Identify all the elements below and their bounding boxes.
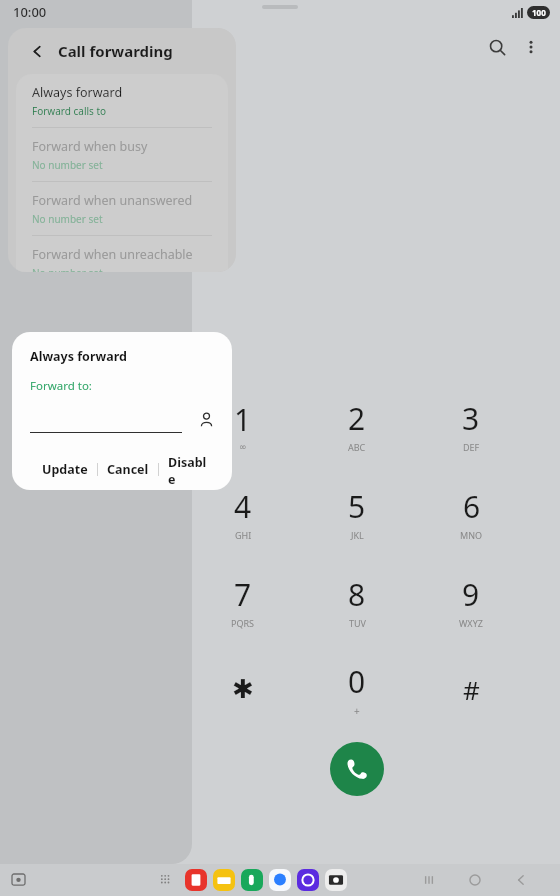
- button[interactable]: 6: [414, 476, 528, 550]
- button[interactable]: 7: [186, 564, 300, 638]
- staticText: No number set: [32, 212, 103, 226]
- staticText: Always forward: [32, 84, 123, 101]
- staticText: GHI: [235, 529, 252, 541]
- button[interactable]: Search: [480, 30, 514, 64]
- button[interactable]: Internet: [297, 869, 319, 891]
- staticText: Disable: [168, 454, 210, 485]
- staticText: 4: [234, 486, 252, 527]
- staticText: 100: [532, 7, 546, 18]
- button[interactable]: More options: [514, 30, 548, 64]
- button[interactable]: Update: [36, 456, 94, 483]
- staticText: Forward to:: [30, 378, 92, 394]
- button[interactable]: Recents: [412, 864, 446, 896]
- staticText: No number set: [32, 266, 103, 272]
- staticText: #: [463, 672, 480, 707]
- button[interactable]: Notes: [185, 869, 207, 891]
- button[interactable]: 4: [186, 476, 300, 550]
- staticText: ∞: [239, 442, 247, 452]
- button[interactable]: Always forward: [16, 74, 228, 128]
- button[interactable]: Choose contact: [196, 408, 216, 430]
- staticText: 0: [348, 661, 366, 702]
- staticText: PQRS: [231, 617, 255, 629]
- button[interactable]: Messages: [269, 869, 291, 891]
- button[interactable]: Back: [26, 40, 48, 62]
- staticText: 8: [348, 574, 366, 615]
- button[interactable]: 3: [414, 388, 528, 462]
- staticText: Forward when unreachable: [32, 246, 193, 263]
- button[interactable]: 0: [300, 652, 414, 726]
- staticText: Call forwarding: [58, 41, 173, 61]
- button[interactable]: #: [414, 652, 528, 726]
- staticText: 3: [462, 398, 480, 439]
- button[interactable]: 2: [300, 388, 414, 462]
- button[interactable]: 5: [300, 476, 414, 550]
- staticText: 5: [348, 486, 366, 527]
- staticText: 10:00: [13, 3, 47, 21]
- staticText: 1: [234, 399, 252, 440]
- staticText: Update: [42, 461, 88, 478]
- button[interactable]: Phone: [241, 869, 263, 891]
- button[interactable]: Forward when busy: [16, 128, 228, 182]
- staticText: 9: [462, 574, 480, 615]
- button[interactable]: Call: [330, 742, 384, 796]
- button[interactable]: Home: [458, 864, 492, 896]
- button[interactable]: Apps: [155, 869, 177, 891]
- button[interactable]: 1: [186, 388, 300, 462]
- button[interactable]: Camera: [325, 869, 347, 891]
- staticText: WXYZ: [459, 617, 483, 629]
- staticText: Always forward: [30, 348, 127, 365]
- button[interactable]: 9: [414, 564, 528, 638]
- button[interactable]: Forward when unreachable: [16, 236, 228, 272]
- staticText: ✱: [232, 674, 254, 704]
- staticText: TUV: [349, 617, 366, 629]
- button[interactable]: Disable: [162, 449, 216, 490]
- button[interactable]: Cancel: [101, 456, 155, 483]
- staticText: Forward when busy: [32, 138, 148, 155]
- button[interactable]: Forward when unanswered: [16, 182, 228, 236]
- staticText: DEF: [463, 441, 480, 453]
- staticText: JKL: [351, 529, 364, 541]
- staticText: +: [354, 704, 360, 718]
- staticText: MNO: [460, 529, 483, 541]
- staticText: 2: [348, 398, 366, 439]
- button[interactable]: Files: [213, 869, 235, 891]
- staticText: Cancel: [107, 461, 149, 478]
- button[interactable]: ✱: [186, 652, 300, 726]
- staticText: 6: [463, 486, 481, 527]
- button[interactable]: Back: [504, 864, 538, 896]
- button[interactable]: Screenshot: [6, 868, 30, 892]
- staticText: No number set: [32, 158, 103, 172]
- staticText: ABC: [348, 441, 366, 453]
- staticText: Forward calls to: [32, 104, 107, 118]
- staticText: 7: [234, 574, 252, 615]
- staticText: Forward when unanswered: [32, 192, 193, 209]
- button[interactable]: 8: [300, 564, 414, 638]
